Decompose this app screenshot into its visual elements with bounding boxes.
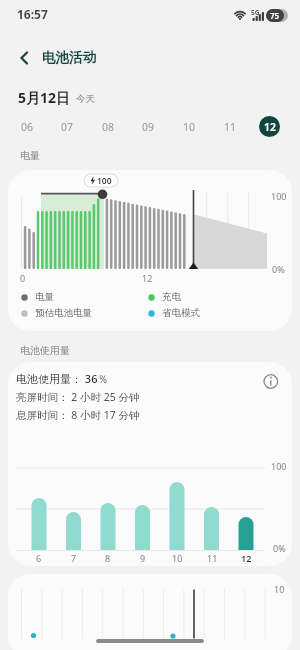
staticText: 电量: [35, 291, 54, 303]
button[interactable]: 08: [90, 114, 126, 140]
staticText: 10: [183, 120, 196, 134]
staticText: 8: [105, 552, 111, 564]
staticText: 5月12日: [18, 88, 71, 107]
button[interactable]: 11: [212, 114, 248, 140]
button[interactable]: 10: [171, 114, 207, 140]
button[interactable]: 07: [49, 114, 85, 140]
staticText: 100: [97, 175, 112, 187]
staticText: 06: [21, 120, 34, 134]
staticText: 10: [274, 583, 285, 595]
staticText: 省电模式: [162, 307, 200, 319]
staticText: 11: [224, 120, 237, 134]
staticText: 电池活动: [42, 49, 96, 66]
staticText: 今天: [76, 93, 95, 105]
staticText: 充电: [162, 291, 181, 303]
button[interactable]: [12, 84, 122, 108]
staticText: 11: [207, 552, 218, 564]
staticText: 07: [61, 120, 74, 134]
staticText: 电池使用量: [20, 344, 70, 357]
staticText: 100: [271, 190, 287, 202]
staticText: 09: [142, 120, 155, 134]
staticText: 亮屏时间： 2 小时 25 分钟: [16, 390, 140, 404]
staticText: 0%: [273, 542, 286, 554]
staticText: 12: [264, 120, 277, 134]
staticText: 9: [140, 552, 146, 564]
staticText: 75: [270, 10, 280, 21]
staticText: 12: [241, 552, 252, 564]
staticText: 0%: [272, 263, 285, 275]
staticText: 5G: [251, 8, 260, 17]
staticText: 电池使用量： 36％: [16, 371, 109, 386]
staticText: 0: [20, 272, 26, 284]
staticText: 电量: [20, 149, 40, 162]
staticText: 100: [271, 460, 287, 472]
staticText: 预估电池电量: [35, 307, 92, 319]
button[interactable]: 06: [9, 114, 45, 140]
button[interactable]: [257, 362, 285, 390]
button[interactable]: [10, 44, 44, 74]
staticText: 16:57: [17, 6, 48, 22]
staticText: 12: [142, 272, 153, 284]
staticText: 息屏时间： 8 小时 17 分钟: [16, 408, 140, 422]
staticText: 7: [71, 552, 77, 564]
staticText: 08: [102, 120, 115, 134]
button[interactable]: 09: [130, 114, 166, 140]
staticText: 10: [172, 552, 183, 564]
button[interactable]: 12: [252, 114, 288, 140]
staticText: 6: [36, 552, 42, 564]
